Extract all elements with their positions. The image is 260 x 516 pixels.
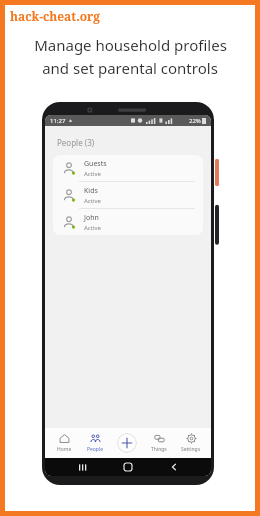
button[interactable]: Recents [73, 458, 91, 476]
staticText: 11:27 [50, 117, 66, 125]
staticText: Active [84, 170, 101, 178]
staticText: Active [84, 197, 101, 205]
button[interactable]: People [80, 428, 111, 458]
staticText: hack-cheat.org [10, 8, 101, 24]
button[interactable]: Things [143, 428, 175, 458]
staticText: Guests [84, 159, 107, 169]
staticText: John [84, 213, 99, 223]
button[interactable]: Guests [53, 155, 203, 181]
button[interactable]: Settings [175, 428, 207, 458]
button[interactable]: Back [165, 458, 183, 476]
button[interactable]: Home [49, 428, 80, 458]
button[interactable]: John [53, 209, 203, 235]
staticText: Things [151, 446, 167, 453]
staticText: Home [57, 446, 72, 453]
staticText: 22% [189, 117, 201, 125]
button[interactable]: Kids [53, 182, 203, 208]
staticText: and set parental controls [42, 58, 218, 78]
staticText: Kids [84, 186, 98, 196]
staticText: Settings [181, 446, 201, 453]
button[interactable]: Home [119, 458, 137, 476]
staticText: People [87, 446, 104, 453]
staticText: Active [84, 224, 101, 232]
button[interactable]: Add [111, 428, 143, 458]
staticText: People (3) [57, 137, 95, 148]
staticText: Manage household profiles [34, 35, 227, 55]
